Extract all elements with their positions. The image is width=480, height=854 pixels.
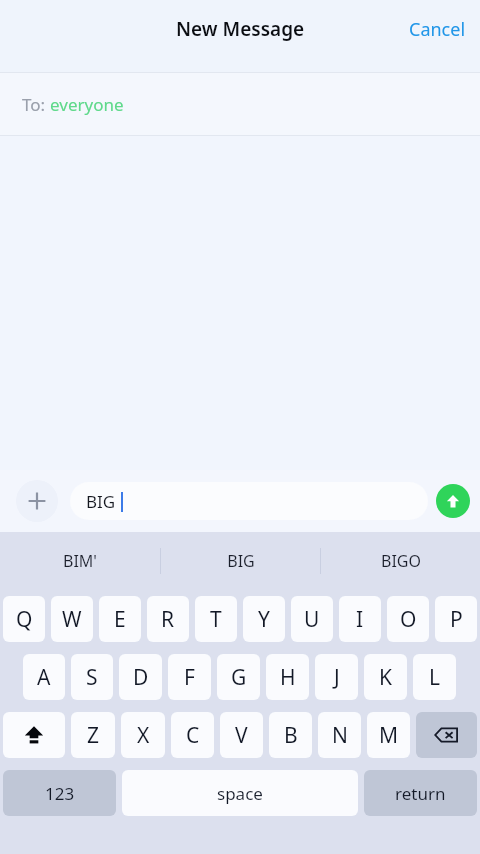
- button[interactable]: BIM': [0, 541, 160, 581]
- staticText: O: [400, 605, 417, 634]
- button[interactable]: G: [217, 654, 260, 700]
- button[interactable]: Y: [243, 596, 285, 642]
- staticText: space: [217, 782, 263, 805]
- staticText: X: [137, 721, 150, 750]
- staticText: M: [379, 721, 399, 750]
- button[interactable]: L: [413, 654, 456, 700]
- button[interactable]: Q: [3, 596, 45, 642]
- button[interactable]: K: [364, 654, 407, 700]
- button[interactable]: P: [435, 596, 477, 642]
- staticText: N: [332, 721, 348, 750]
- button[interactable]: U: [291, 596, 333, 642]
- staticText: P: [450, 605, 463, 634]
- button[interactable]: BIG: [70, 482, 428, 520]
- staticText: I: [356, 605, 364, 634]
- button[interactable]: X: [121, 712, 165, 758]
- staticText: W: [62, 605, 82, 634]
- button[interactable]: Send: [436, 484, 470, 518]
- staticText: C: [186, 721, 200, 750]
- button[interactable]: T: [195, 596, 237, 642]
- button[interactable]: A: [23, 654, 65, 700]
- staticText: Q: [16, 605, 33, 634]
- button[interactable]: R: [147, 596, 189, 642]
- button[interactable]: I: [339, 596, 381, 642]
- button[interactable]: S: [71, 654, 113, 700]
- button[interactable]: 123: [3, 770, 116, 816]
- staticText: K: [379, 663, 392, 692]
- staticText: U: [304, 605, 320, 634]
- button[interactable]: W: [51, 596, 93, 642]
- staticText: R: [161, 605, 175, 634]
- staticText: J: [334, 663, 340, 692]
- staticText: Y: [258, 605, 270, 634]
- staticText: B: [284, 721, 298, 750]
- button[interactable]: BIG: [161, 541, 320, 581]
- button[interactable]: E: [99, 596, 141, 642]
- staticText: F: [184, 663, 195, 692]
- staticText: BIG: [227, 550, 255, 572]
- staticText: T: [210, 605, 222, 634]
- staticText: S: [86, 663, 98, 692]
- staticText: D: [133, 663, 149, 692]
- button[interactable]: return: [364, 770, 477, 816]
- staticText: BIG: [86, 490, 116, 513]
- staticText: A: [37, 663, 51, 692]
- staticText: V: [235, 721, 248, 750]
- button[interactable]: N: [318, 712, 361, 758]
- staticText: return: [395, 782, 446, 805]
- staticText: 123: [45, 782, 75, 805]
- button[interactable]: D: [119, 654, 162, 700]
- staticText: H: [280, 663, 296, 692]
- button[interactable]: To:: [0, 73, 480, 135]
- button[interactable]: Z: [71, 712, 115, 758]
- button[interactable]: F: [168, 654, 211, 700]
- button[interactable]: Cancel: [395, 11, 480, 48]
- staticText: BIGO: [381, 550, 421, 572]
- staticText: L: [429, 663, 441, 692]
- staticText: Z: [87, 721, 100, 750]
- button[interactable]: Shift: [3, 712, 65, 758]
- button[interactable]: H: [266, 654, 309, 700]
- staticText: G: [231, 663, 247, 692]
- button[interactable]: C: [171, 712, 214, 758]
- button[interactable]: BIGO: [321, 541, 480, 581]
- button[interactable]: V: [220, 712, 263, 758]
- staticText: BIM': [63, 550, 97, 572]
- staticText: Cancel: [409, 17, 466, 42]
- button[interactable]: M: [367, 712, 410, 758]
- staticText: E: [114, 605, 126, 634]
- staticText: New Message: [176, 16, 305, 42]
- staticText: To:: [22, 93, 50, 116]
- button[interactable]: O: [387, 596, 429, 642]
- staticText: everyone: [50, 93, 124, 116]
- button[interactable]: space: [122, 770, 358, 816]
- button[interactable]: J: [315, 654, 358, 700]
- button[interactable]: Backspace: [416, 712, 477, 758]
- button[interactable]: Add attachment: [16, 480, 58, 522]
- button[interactable]: B: [269, 712, 312, 758]
